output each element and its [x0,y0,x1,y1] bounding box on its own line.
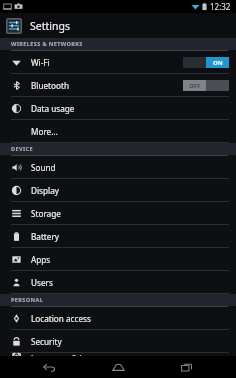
staticText: Security [31,336,62,347]
staticText: Users [31,277,53,288]
staticText: Battery [31,231,60,242]
staticText: Display [31,185,59,196]
button[interactable]: Back [29,356,69,378]
button[interactable]: Settings [0,13,236,38]
staticText: More… [31,126,58,137]
staticText: Storage [31,208,61,219]
button[interactable]: Security [0,330,236,353]
button[interactable]: Language & input [0,353,236,356]
button[interactable]: Wi-Fi on [183,57,229,68]
button[interactable]: Battery [0,225,236,248]
button[interactable]: Data usage [0,97,236,120]
button[interactable]: Storage [0,202,236,225]
staticText: Settings [30,19,70,33]
staticText: ON [213,59,223,67]
button[interactable]: Apps [0,248,236,271]
button[interactable]: Wi-Fi [0,51,236,74]
button[interactable]: Users [0,271,236,294]
staticText: Bluetooth [31,80,69,91]
button[interactable]: Location access [0,307,236,330]
button[interactable]: Display [0,179,236,202]
button[interactable]: Recent apps [167,356,207,378]
staticText: DEVICE [11,145,33,153]
button[interactable]: Home [98,356,138,378]
staticText: Data usage [31,103,75,114]
staticText: 12:32 [210,1,231,12]
button[interactable]: Sound [0,156,236,179]
staticText: Location access [31,313,91,324]
button[interactable]: More… [0,120,236,143]
staticText: Wi-Fi [31,57,50,68]
staticText: Language & input [31,353,100,356]
button[interactable]: Bluetooth [0,74,236,97]
staticText: OFF [189,82,201,90]
staticText: Sound [31,162,56,173]
button[interactable]: Bluetooth off [183,80,229,91]
staticText: PERSONAL [11,296,44,304]
staticText: Apps [31,254,51,265]
staticText: WIRELESS & NETWORKS [11,40,83,48]
